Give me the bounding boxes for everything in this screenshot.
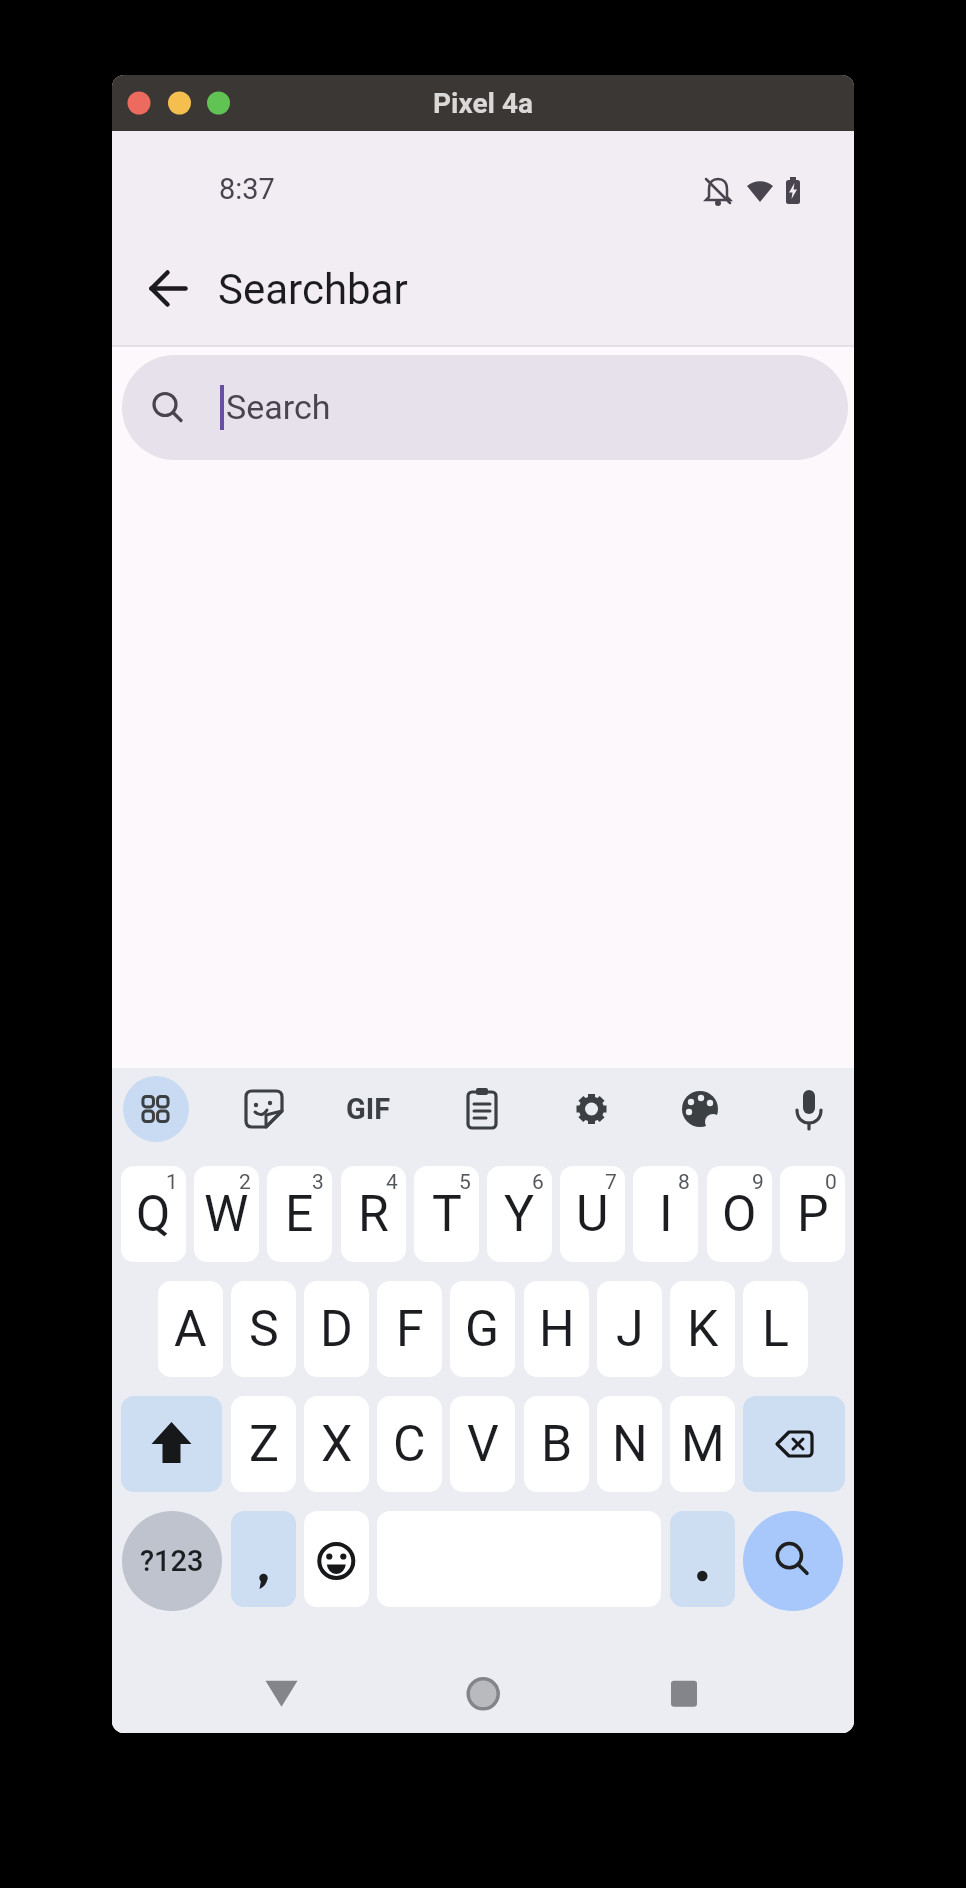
button[interactable] bbox=[449, 1076, 515, 1142]
staticText: N bbox=[612, 1415, 648, 1474]
staticText: F bbox=[396, 1300, 424, 1359]
button[interactable]: G bbox=[450, 1281, 515, 1377]
button[interactable] bbox=[743, 1511, 843, 1611]
button[interactable] bbox=[450, 1661, 516, 1727]
button[interactable] bbox=[776, 1076, 842, 1142]
staticText: Search bbox=[226, 387, 331, 427]
button[interactable]: M bbox=[670, 1396, 735, 1492]
staticText: D bbox=[320, 1300, 353, 1359]
button[interactable]: Search bbox=[122, 355, 848, 460]
button[interactable]: E bbox=[267, 1166, 332, 1262]
button[interactable] bbox=[559, 1076, 625, 1142]
button[interactable] bbox=[249, 1661, 315, 1727]
staticText: Q bbox=[136, 1185, 171, 1244]
staticText: K bbox=[687, 1300, 719, 1359]
staticText: 3 bbox=[312, 1170, 324, 1195]
staticText: 2 bbox=[239, 1170, 251, 1195]
button[interactable]: L bbox=[743, 1281, 808, 1377]
button[interactable] bbox=[667, 1076, 733, 1142]
staticText: T bbox=[432, 1185, 462, 1244]
staticText: X bbox=[321, 1415, 353, 1474]
button[interactable] bbox=[138, 258, 199, 319]
staticText: S bbox=[249, 1300, 279, 1359]
staticText: 8 bbox=[678, 1170, 690, 1195]
button[interactable]: F bbox=[377, 1281, 442, 1377]
button[interactable]: J bbox=[597, 1281, 662, 1377]
button[interactable]: V bbox=[450, 1396, 515, 1492]
button[interactable] bbox=[121, 1396, 222, 1492]
button[interactable]: C bbox=[377, 1396, 442, 1492]
staticText: GIF bbox=[346, 1092, 391, 1126]
staticText: E bbox=[285, 1185, 314, 1244]
button[interactable]: Y bbox=[487, 1166, 552, 1262]
staticText: G bbox=[465, 1300, 500, 1359]
staticText: W bbox=[204, 1185, 249, 1244]
button[interactable]: A bbox=[158, 1281, 223, 1377]
staticText: 5 bbox=[459, 1170, 471, 1195]
staticText: ?123 bbox=[140, 1544, 204, 1578]
staticText: I bbox=[659, 1185, 673, 1244]
button[interactable]: O bbox=[707, 1166, 772, 1262]
staticText: V bbox=[467, 1415, 499, 1474]
button[interactable]: S bbox=[231, 1281, 296, 1377]
staticText: 9 bbox=[752, 1170, 764, 1195]
button[interactable] bbox=[743, 1396, 845, 1492]
staticText: Z bbox=[249, 1415, 279, 1474]
staticText: 0 bbox=[825, 1170, 837, 1195]
button[interactable]: T bbox=[414, 1166, 479, 1262]
button[interactable]: X bbox=[304, 1396, 369, 1492]
button[interactable]: D bbox=[304, 1281, 369, 1377]
staticText: L bbox=[762, 1300, 789, 1359]
button[interactable]: Z bbox=[231, 1396, 296, 1492]
staticText: M bbox=[681, 1415, 725, 1474]
staticText: R bbox=[358, 1185, 389, 1244]
button[interactable]: U bbox=[560, 1166, 625, 1262]
button[interactable]: P bbox=[780, 1166, 845, 1262]
staticText: O bbox=[722, 1185, 757, 1244]
button[interactable] bbox=[304, 1511, 369, 1607]
staticText: U bbox=[576, 1185, 609, 1244]
staticText: Pixel 4a bbox=[433, 87, 534, 120]
staticText: B bbox=[541, 1415, 573, 1474]
staticText: A bbox=[174, 1300, 207, 1359]
staticText: 7 bbox=[605, 1170, 617, 1195]
staticText: Searchbar bbox=[218, 265, 408, 314]
button[interactable] bbox=[123, 1076, 189, 1142]
button[interactable] bbox=[231, 1076, 297, 1142]
staticText: C bbox=[393, 1415, 426, 1474]
button[interactable] bbox=[670, 1511, 735, 1607]
staticText: J bbox=[616, 1300, 644, 1359]
button[interactable] bbox=[340, 1076, 406, 1142]
button[interactable]: K bbox=[670, 1281, 735, 1377]
staticText: 8:37 bbox=[219, 172, 275, 206]
staticText: P bbox=[797, 1185, 829, 1244]
button[interactable]: B bbox=[524, 1396, 589, 1492]
staticText: 4 bbox=[386, 1170, 398, 1195]
staticText: Y bbox=[504, 1185, 535, 1244]
button[interactable]: ?123 bbox=[122, 1511, 222, 1611]
button[interactable] bbox=[231, 1511, 296, 1607]
staticText: 6 bbox=[532, 1170, 544, 1195]
button[interactable] bbox=[651, 1661, 717, 1727]
button[interactable]: R bbox=[341, 1166, 406, 1262]
button[interactable]: I bbox=[633, 1166, 698, 1262]
button[interactable]: W bbox=[194, 1166, 259, 1262]
staticText: 1 bbox=[166, 1170, 178, 1195]
button[interactable]: H bbox=[524, 1281, 589, 1377]
button[interactable]: Q bbox=[121, 1166, 186, 1262]
staticText: H bbox=[539, 1300, 575, 1359]
button[interactable]: N bbox=[597, 1396, 662, 1492]
